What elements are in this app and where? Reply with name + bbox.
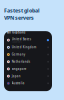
staticText: Netherlands (12, 60, 30, 63)
staticText: VPN servers (4, 14, 34, 21)
staticText: 128 servers (12, 41, 22, 43)
staticText: Singapore (12, 67, 27, 71)
staticText: Japan (12, 74, 21, 78)
button[interactable]: Singapore (4, 65, 52, 72)
button[interactable]: Australia (4, 80, 52, 87)
button[interactable]: United Kingdom (4, 44, 52, 51)
staticText: All locations (7, 31, 25, 34)
button[interactable]: Netherlands (4, 58, 52, 65)
button[interactable]: Japan (4, 72, 52, 80)
staticText: Germany (12, 53, 25, 56)
button[interactable]: Germany (4, 51, 52, 58)
staticText: Australia (12, 82, 25, 85)
button[interactable]: United States (4, 36, 52, 44)
staticText: United States (12, 37, 31, 41)
staticText: United Kingdom (12, 46, 37, 49)
staticText: Fastest global (4, 7, 40, 14)
